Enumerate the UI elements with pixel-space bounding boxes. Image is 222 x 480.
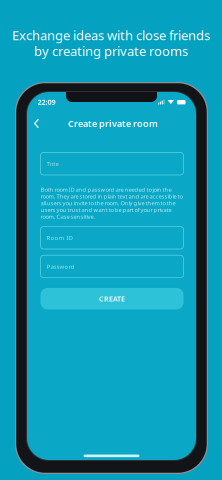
staticText: by creating private rooms bbox=[34, 42, 188, 60]
staticText: CREATE bbox=[99, 294, 125, 304]
staticText: Room ID bbox=[46, 234, 72, 242]
staticText: Create private room bbox=[68, 117, 158, 130]
staticText: Password bbox=[46, 262, 74, 271]
button[interactable]: CREATE bbox=[40, 288, 183, 309]
staticText: Title bbox=[46, 160, 58, 168]
staticText: Exchange ideas with close friends bbox=[12, 26, 210, 44]
staticText: 22:09 bbox=[37, 97, 55, 107]
button[interactable]: Back bbox=[27, 114, 44, 133]
staticText: Both room ID and password are needed to … bbox=[40, 185, 182, 220]
